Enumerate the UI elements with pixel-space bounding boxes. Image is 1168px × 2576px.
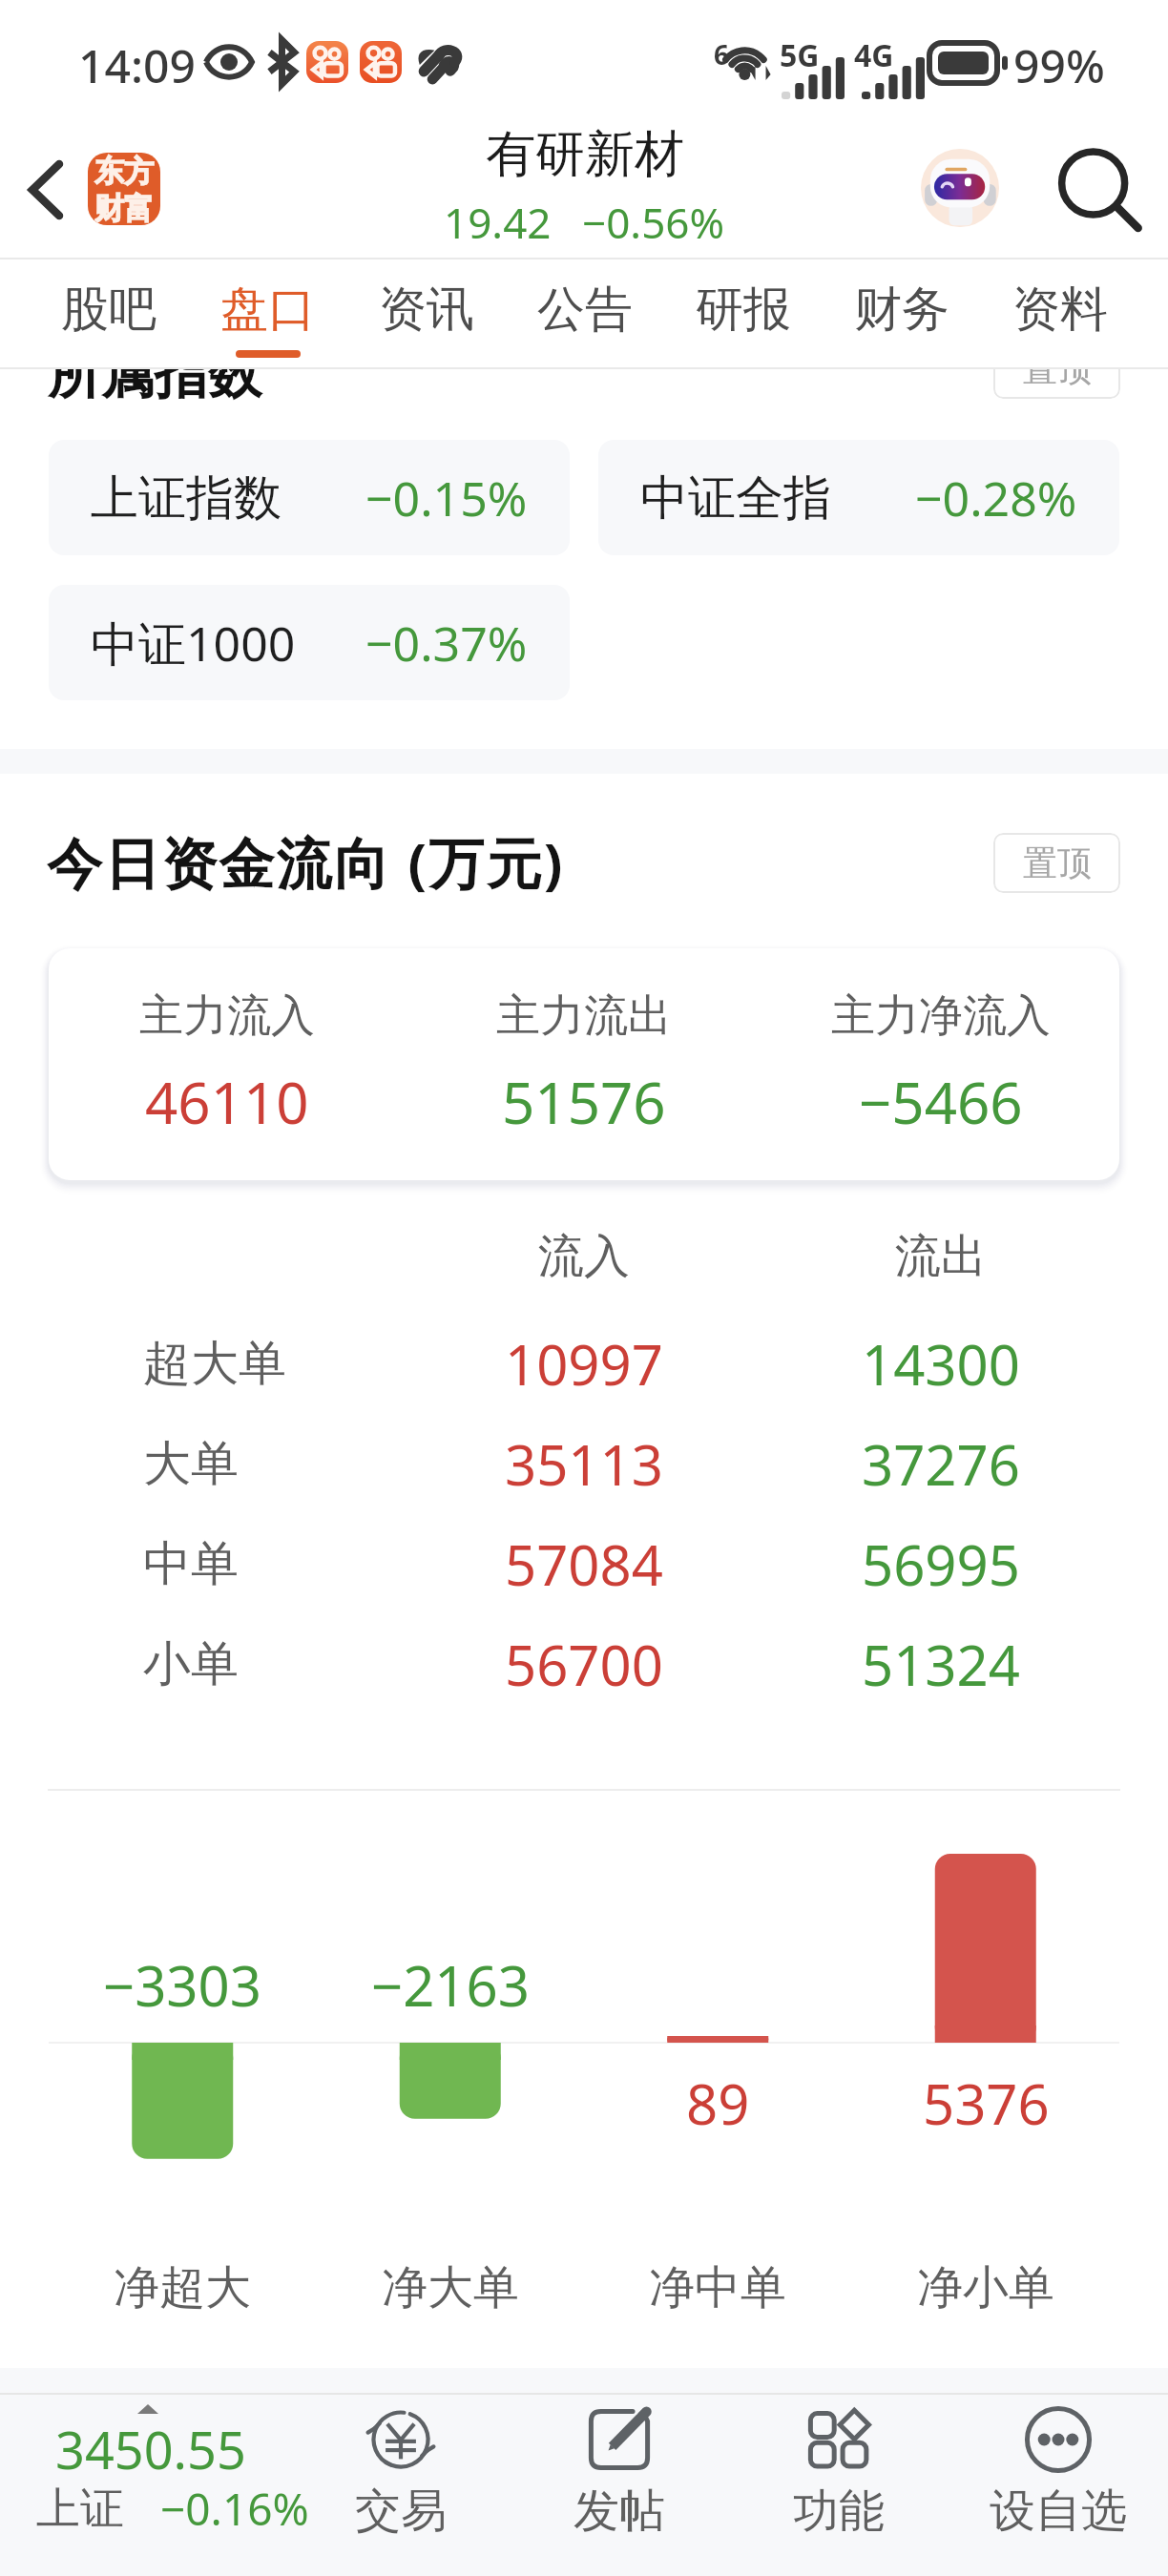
staticText: 中证全指 [640,468,831,529]
staticText: 东方 [94,153,154,190]
staticText: 置顶 [1023,841,1092,884]
staticText: 56700 [505,1627,663,1702]
button[interactable]: 超大单 [0,1314,1168,1414]
staticText: 5G [780,34,820,76]
staticText: 上证指数 [91,468,282,529]
staticText: 中单 [143,1534,239,1594]
staticText: −0.16% [160,2479,309,2539]
staticText: 6 [714,36,730,73]
button[interactable]: 研报 [664,260,823,369]
button[interactable]: 3450.55 [0,2393,291,2576]
staticText: −5466 [859,1063,1023,1141]
staticText: 盘口 [220,280,316,340]
staticText: 4G [854,34,894,76]
button[interactable]: 交易 [291,2393,510,2576]
staticText: −3303 [103,1947,261,2023]
staticText: 10997 [505,1326,663,1402]
button[interactable]: 盘口 [188,260,347,369]
staticText: 净小单 [917,2259,1054,2316]
staticText: −0.37% [365,611,528,675]
button[interactable]: 财务 [823,260,981,369]
staticText: 46110 [145,1063,309,1141]
button[interactable]: AI assistant [921,149,999,227]
staticText: 有研新材 [486,123,684,186]
staticText: 51324 [862,1627,1020,1702]
staticText: 37276 [862,1426,1020,1502]
staticText: 上证 [36,2482,124,2537]
staticText: 主力净流入 [831,988,1051,1044]
staticText: 89 [686,2066,750,2141]
button[interactable]: 主力流入 [49,948,1119,1180]
button[interactable]: 功能 [729,2393,949,2576]
staticText: 3450.55 [55,2414,246,2484]
staticText: 今日资金流向 (万元) [47,824,565,900]
staticText: −2163 [371,1947,530,2023]
button[interactable]: 公告 [506,260,664,369]
button[interactable]: East Money [88,153,160,225]
staticText: 设自选 [990,2483,1127,2540]
staticText: 所属指数 [48,341,261,408]
button[interactable]: 中证1000 [49,585,570,700]
button[interactable]: 资讯 [347,260,506,369]
staticText: 交易 [355,2483,447,2540]
staticText: 发帖 [574,2483,665,2540]
button[interactable]: 有研新材 [444,123,725,251]
staticText: 净中单 [649,2259,786,2316]
staticText: 净超大 [114,2259,251,2316]
staticText: 财务 [854,280,949,340]
button[interactable]: 上证指数 [49,440,570,555]
staticText: −0.28% [915,466,1077,530]
staticText: 资讯 [379,280,474,340]
staticText: 公告 [537,280,633,340]
staticText: 中证1000 [91,611,296,675]
staticText: 57084 [505,1527,663,1602]
staticText: 5376 [923,2066,1050,2141]
staticText: 56995 [862,1527,1020,1602]
staticText: 功能 [793,2483,885,2540]
button[interactable]: 中证全指 [598,440,1119,555]
button[interactable]: 资料 [981,260,1139,369]
staticText: 大单 [143,1434,239,1494]
staticText: 流入 [538,1228,630,1285]
button[interactable]: 发帖 [510,2393,729,2576]
staticText: 超大单 [143,1334,286,1394]
staticText: 流出 [895,1228,987,1285]
staticText: −0.15% [365,466,528,530]
button[interactable]: 大单 [0,1414,1168,1514]
button[interactable]: 设自选 [949,2393,1168,2576]
button[interactable]: 小单 [0,1614,1168,1714]
button[interactable]: Search [1044,124,1168,260]
staticText: 14:09 [78,34,196,96]
staticText: 研报 [696,280,791,340]
staticText: 净大单 [382,2259,519,2316]
button[interactable]: 置顶 [993,339,1120,399]
staticText: 主力流入 [139,988,315,1044]
button[interactable]: 中单 [0,1514,1168,1614]
staticText: 14300 [862,1326,1020,1402]
button[interactable]: Back [0,124,88,260]
staticText: −0.56% [582,194,725,251]
staticText: 19.42 [444,194,552,251]
button[interactable]: 股吧 [29,260,188,369]
staticText: 51576 [502,1063,666,1141]
staticText: 小单 [143,1634,239,1694]
staticText: 置顶 [1023,347,1092,390]
staticText: 股吧 [61,280,156,340]
staticText: 35113 [505,1426,663,1502]
staticText: 财富 [94,190,154,225]
staticText: 主力流出 [496,988,672,1044]
staticText: 资料 [1012,280,1108,340]
staticText: 99% [1013,34,1105,96]
button[interactable]: 置顶 [993,833,1120,893]
